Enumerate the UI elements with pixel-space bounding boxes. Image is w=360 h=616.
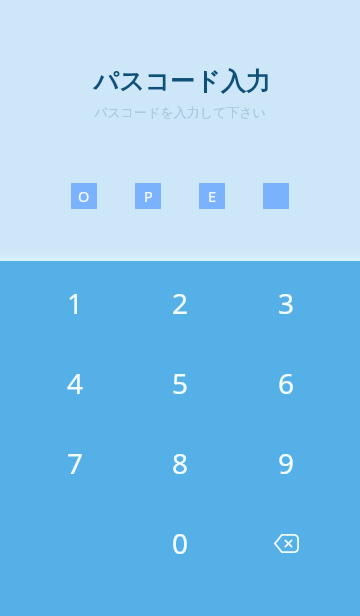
staticText: 9 (278, 444, 295, 482)
button[interactable]: Delete (233, 503, 339, 583)
button[interactable]: 4 (22, 343, 128, 423)
button[interactable]: 1 (22, 263, 128, 343)
button[interactable]: 0 (127, 503, 233, 583)
button[interactable]: 3 (233, 263, 339, 343)
button[interactable]: 6 (233, 343, 339, 423)
staticText: 8 (172, 444, 189, 482)
button[interactable]: 2 (127, 263, 233, 343)
staticText: 7 (67, 444, 84, 482)
button[interactable]: 8 (127, 423, 233, 503)
staticText: 4 (67, 364, 84, 402)
staticText: 3 (278, 284, 295, 322)
staticText: 2 (172, 284, 189, 322)
staticText: 6 (278, 364, 295, 402)
staticText: 0 (172, 524, 189, 562)
button[interactable]: 5 (127, 343, 233, 423)
staticText: パスコード入力 (93, 66, 271, 97)
staticText: E (208, 186, 217, 206)
staticText: 1 (67, 284, 84, 322)
staticText: 5 (172, 364, 189, 402)
button[interactable]: Passcode character (199, 183, 225, 209)
button[interactable]: Passcode character (135, 183, 161, 209)
button[interactable]: 7 (22, 423, 128, 503)
staticText: パスコードを入力して下さい (94, 104, 266, 120)
staticText: P (144, 186, 153, 206)
staticText: O (78, 186, 90, 206)
button[interactable]: 9 (233, 423, 339, 503)
button[interactable]: Passcode character (71, 183, 97, 209)
